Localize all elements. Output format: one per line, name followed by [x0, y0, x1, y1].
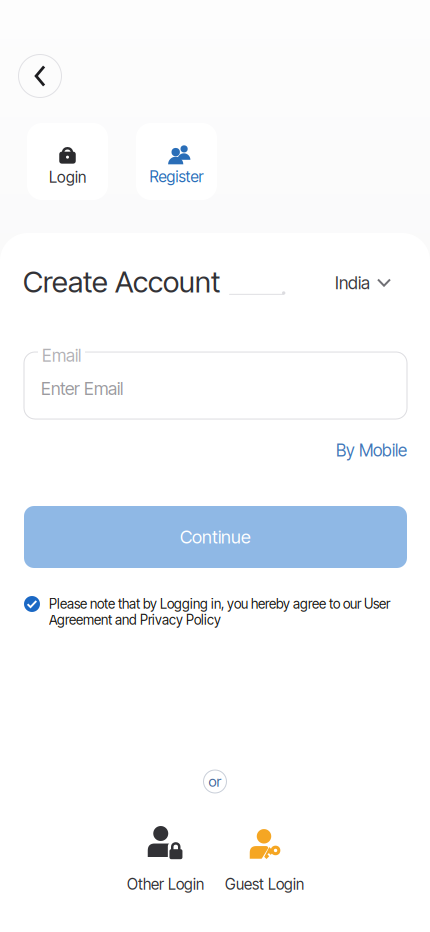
staticText: Create Account — [23, 264, 220, 299]
button[interactable]: Register — [136, 123, 217, 200]
staticText: Login — [49, 168, 86, 186]
staticText: Email — [42, 345, 81, 366]
staticText: or — [208, 773, 221, 790]
staticText: Register — [149, 167, 203, 186]
button[interactable]: India — [335, 272, 391, 294]
button[interactable]: By Mobile — [336, 440, 407, 461]
button[interactable]: Continue — [24, 506, 407, 568]
button[interactable]: Other Login — [116, 818, 215, 893]
staticText: Guest Login — [225, 875, 304, 893]
button[interactable]: Login — [27, 123, 108, 200]
staticText: India — [335, 272, 370, 293]
staticText: Enter Email — [41, 378, 123, 399]
staticText: By Mobile — [336, 440, 407, 461]
staticText: Continue — [180, 526, 251, 548]
staticText: Please note that by Logging in, you here… — [49, 596, 390, 628]
staticText: Other Login — [127, 875, 204, 893]
button[interactable]: Back — [18, 54, 61, 97]
button[interactable]: Guest Login — [215, 818, 314, 893]
